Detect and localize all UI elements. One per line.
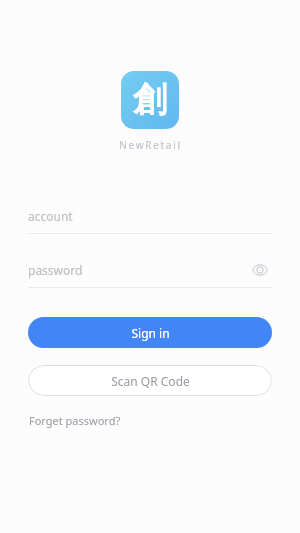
button[interactable]: Scan QR Code (28, 365, 272, 396)
button[interactable]: Show password (248, 258, 272, 282)
staticText: account (28, 208, 73, 224)
button[interactable]: password (28, 258, 272, 282)
staticText: Scan QR Code (111, 373, 190, 389)
button[interactable]: Forget password? (28, 410, 122, 431)
staticText: NewRetail (119, 138, 182, 152)
button[interactable]: Sign in (28, 317, 272, 348)
staticText: Forget password? (29, 413, 121, 428)
staticText: 創 (133, 78, 167, 121)
button[interactable]: account (28, 204, 272, 234)
staticText: password (28, 262, 83, 278)
staticText: Sign in (131, 325, 170, 341)
